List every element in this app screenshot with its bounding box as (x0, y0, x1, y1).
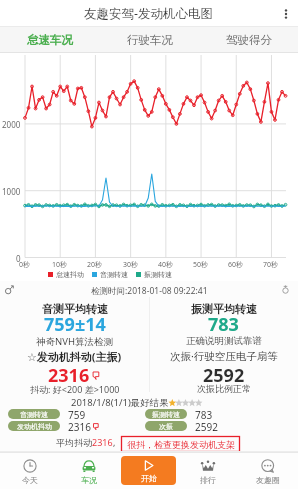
staticText: 60秒 (228, 260, 244, 270)
staticText: 神奇NVH算法检测 (36, 335, 113, 348)
staticText: 开始 (141, 473, 157, 483)
button[interactable]: 排行 (178, 452, 238, 489)
staticText: 排行 (200, 475, 216, 485)
button[interactable]: More options (274, 0, 298, 27)
staticText: 很抖，检查更换发动机支架 (127, 439, 235, 450)
staticText: 0 (16, 253, 21, 264)
button[interactable]: 开始 (121, 456, 176, 485)
staticText: 怠速车况 (27, 33, 73, 47)
staticText: 友趣圈 (256, 475, 280, 485)
staticText: 驾驶得分 (226, 33, 272, 47)
staticText: 783 (195, 408, 213, 420)
staticText: 759 (68, 408, 86, 420)
staticText: 振测转速 (152, 410, 180, 419)
staticText: 40秒 (158, 260, 174, 270)
staticText: 2592 (195, 420, 218, 432)
staticText: 次振比例正常 (197, 383, 251, 394)
staticText: 振测平均转速 (191, 302, 257, 316)
staticText: 今天 (22, 475, 38, 485)
button[interactable]: 友趣圈 (238, 452, 298, 489)
staticText: 759±14 (44, 312, 106, 337)
staticText: 检测时间:2018-01-08 09:22:41 (91, 285, 208, 297)
staticText: ☆发动机抖动(主振) (27, 349, 122, 364)
button[interactable]: 今天 (0, 452, 59, 489)
staticText: 音测转速 (20, 410, 48, 419)
staticText: 次振 (159, 422, 173, 431)
staticText: 50秒 (193, 260, 209, 270)
staticText: 30秒 (123, 260, 139, 270)
staticText: 音测转速 (100, 270, 128, 279)
staticText: 行驶车况 (127, 33, 173, 47)
staticText: 友趣安驾-发动机心电图 (84, 5, 214, 22)
staticText: 1000 (2, 186, 21, 197)
button[interactable]: 怠速车况 (0, 27, 100, 53)
staticText: 783 (208, 312, 239, 337)
staticText: 平均抖动 (56, 437, 92, 448)
staticText: 2592 (203, 363, 245, 388)
button[interactable]: 行驶车况 (100, 27, 199, 53)
staticText: 2316 (48, 363, 90, 388)
staticText: 次振·行驶空压电子扇等 (170, 349, 278, 363)
button[interactable]: 驾驶得分 (199, 27, 298, 53)
button[interactable]: 车况 (59, 452, 118, 489)
staticText: 2316 (92, 436, 113, 448)
staticText: , (113, 436, 116, 448)
staticText: 70秒 (263, 260, 279, 270)
staticText: 怠速抖动 (56, 270, 84, 279)
staticText: 0秒 (19, 260, 31, 270)
staticText: 发动机抖动 (17, 422, 52, 431)
staticText: 音测平均转速 (42, 302, 108, 316)
staticText: 正确说明测试靠谱 (186, 335, 262, 347)
staticText: 振测转速 (144, 270, 172, 279)
staticText: 2000 (2, 119, 21, 130)
staticText: 10秒 (52, 260, 68, 270)
staticText: 2018/1/8(1/1)最好结果 (71, 396, 169, 409)
staticText: 20秒 (87, 260, 103, 270)
staticText: 车况 (81, 475, 97, 485)
staticText: 抖动: 好<200 差>1000 (30, 383, 120, 395)
staticText: 2316 (68, 420, 91, 432)
